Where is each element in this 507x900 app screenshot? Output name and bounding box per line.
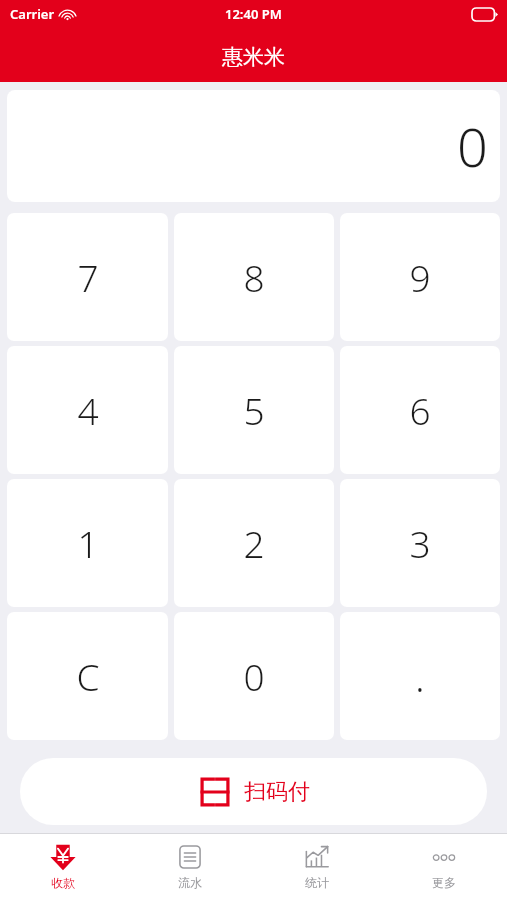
button[interactable]: 3 bbox=[340, 479, 500, 607]
staticText: 0 bbox=[457, 109, 488, 183]
staticText: 更多 bbox=[432, 875, 456, 890]
button[interactable]: 更多 bbox=[380, 833, 507, 900]
button[interactable]: 4 bbox=[7, 346, 168, 474]
staticText: Carrier bbox=[10, 5, 55, 23]
staticText: 收款 bbox=[51, 875, 75, 890]
staticText: 统计 bbox=[305, 875, 329, 890]
staticText: 2 bbox=[243, 518, 265, 568]
button[interactable]: 7 bbox=[7, 213, 168, 341]
button[interactable]: 9 bbox=[340, 213, 500, 341]
button[interactable]: 0 bbox=[7, 90, 500, 202]
staticText: 1 bbox=[77, 518, 99, 568]
button[interactable]: 扫码付 bbox=[20, 758, 487, 825]
staticText: 流水 bbox=[178, 875, 202, 890]
staticText: 12:40 PM bbox=[225, 5, 282, 23]
button[interactable]: 6 bbox=[340, 346, 500, 474]
staticText: C bbox=[76, 651, 100, 701]
staticText: 7 bbox=[77, 252, 99, 302]
button[interactable]: 2 bbox=[174, 479, 334, 607]
button[interactable]: C bbox=[7, 612, 168, 740]
button[interactable]: 流水 bbox=[126, 833, 253, 900]
staticText: 5 bbox=[243, 385, 265, 435]
button[interactable]: 8 bbox=[174, 213, 334, 341]
staticText: 0 bbox=[243, 651, 265, 701]
staticText: 9 bbox=[409, 252, 431, 302]
staticText: 扫码付 bbox=[244, 778, 310, 806]
staticText: 4 bbox=[77, 385, 99, 435]
staticText: 8 bbox=[243, 252, 265, 302]
button[interactable]: 统计 bbox=[253, 833, 380, 900]
button[interactable]: 0 bbox=[174, 612, 334, 740]
staticText: 惠米米 bbox=[222, 44, 285, 70]
button[interactable]: 5 bbox=[174, 346, 334, 474]
button[interactable]: . bbox=[340, 612, 500, 740]
staticText: 6 bbox=[409, 385, 431, 435]
button[interactable]: 收款 bbox=[0, 833, 126, 900]
staticText: 3 bbox=[409, 518, 431, 568]
staticText: . bbox=[415, 649, 425, 703]
button[interactable]: 1 bbox=[7, 479, 168, 607]
